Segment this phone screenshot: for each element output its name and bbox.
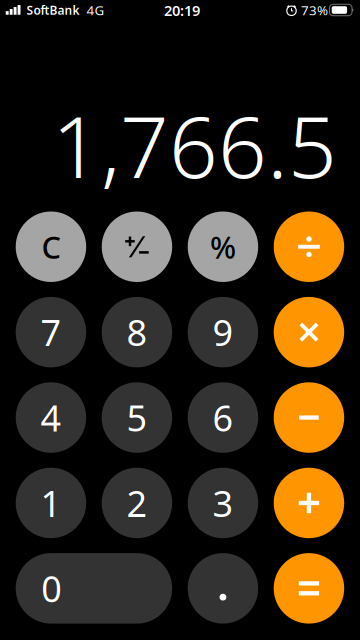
- button[interactable]: 8: [102, 297, 172, 367]
- button[interactable]: Decimal point: [188, 553, 258, 624]
- button[interactable]: Plus minus: [102, 211, 172, 282]
- staticText: C: [41, 226, 60, 267]
- staticText: 7: [40, 308, 61, 356]
- staticText: %: [210, 226, 236, 267]
- button[interactable]: Equals: [274, 553, 344, 624]
- button[interactable]: 3: [188, 468, 258, 538]
- staticText: 0: [41, 564, 62, 612]
- staticText: 2: [126, 479, 147, 527]
- staticText: 1: [40, 479, 61, 527]
- button[interactable]: Subtract: [274, 382, 344, 453]
- button[interactable]: 6: [188, 382, 258, 453]
- button[interactable]: 1: [16, 468, 86, 538]
- staticText: 4G: [86, 1, 104, 19]
- staticText: SoftBank: [26, 2, 79, 18]
- staticText: 1,766.5: [52, 88, 337, 202]
- button[interactable]: Multiply: [274, 297, 344, 367]
- staticText: 73%: [301, 1, 328, 19]
- staticText: 8: [126, 308, 147, 356]
- button[interactable]: %: [188, 211, 258, 282]
- button[interactable]: 7: [16, 297, 86, 367]
- staticText: 3: [212, 479, 233, 527]
- button[interactable]: 0: [16, 553, 172, 624]
- button[interactable]: 5: [102, 382, 172, 453]
- staticText: 6: [212, 394, 233, 441]
- staticText: 5: [126, 394, 147, 441]
- staticText: 4: [40, 394, 61, 441]
- button[interactable]: 2: [102, 468, 172, 538]
- button[interactable]: 4: [16, 382, 86, 453]
- button[interactable]: C: [16, 211, 86, 282]
- button[interactable]: 9: [188, 297, 258, 367]
- staticText: 20:19: [164, 0, 200, 20]
- button[interactable]: Divide: [274, 211, 344, 282]
- button[interactable]: Add: [274, 468, 344, 538]
- staticText: 9: [212, 308, 233, 356]
